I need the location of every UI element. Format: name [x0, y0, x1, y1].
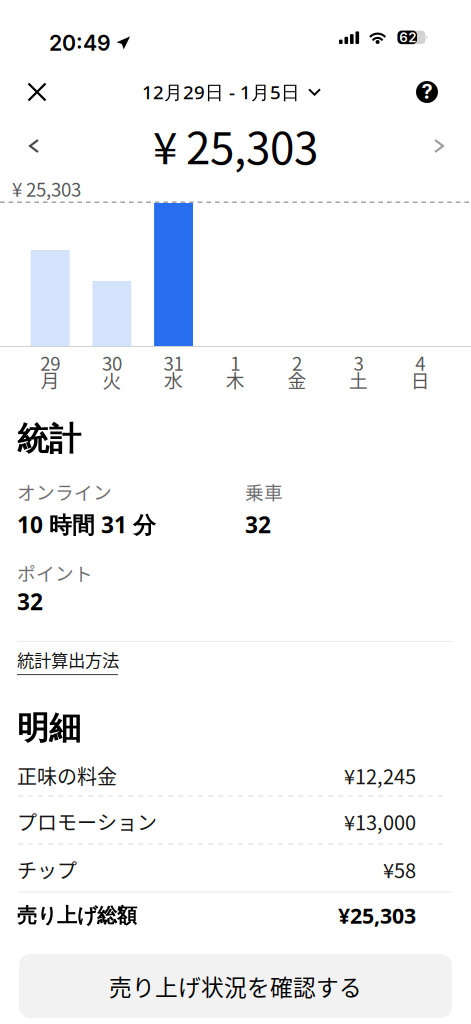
- staticText: ¥25,303: [338, 901, 416, 930]
- staticText: 木: [226, 366, 245, 393]
- staticText: 明細: [17, 708, 81, 748]
- staticText: 32: [17, 586, 43, 617]
- staticText: ポイント: [17, 559, 93, 586]
- staticText: ¥ 25,303: [12, 175, 81, 202]
- staticText: 統計算出方法: [17, 647, 119, 672]
- button[interactable]: Help: [403, 68, 451, 116]
- staticText: 土: [349, 366, 368, 393]
- staticText: 10 時間 31 分: [17, 509, 156, 540]
- button[interactable]: 統計算出方法: [17, 647, 119, 675]
- staticText: 1: [230, 349, 240, 376]
- staticText: 統計: [17, 419, 81, 459]
- staticText: 3: [354, 349, 364, 376]
- staticText: 正味の料金: [17, 761, 117, 790]
- staticText: 日: [411, 366, 430, 393]
- staticText: 30: [102, 349, 122, 376]
- staticText: オンライン: [17, 478, 112, 505]
- button[interactable]: Next week: [416, 123, 462, 169]
- staticText: 金: [287, 366, 306, 393]
- button[interactable]: Previous week: [11, 123, 57, 169]
- button[interactable]: 売り上げ状況を確認する: [19, 954, 452, 1018]
- staticText: 売り上げ総額: [17, 903, 137, 928]
- staticText: ¥13,000: [344, 807, 416, 836]
- staticText: 水: [164, 366, 183, 393]
- staticText: チップ: [17, 855, 77, 884]
- staticText: ¥58: [383, 855, 416, 884]
- staticText: 31: [163, 349, 183, 376]
- staticText: 月: [41, 366, 60, 393]
- staticText: 売り上げ状況を確認する: [109, 970, 362, 1002]
- staticText: 32: [245, 509, 271, 540]
- staticText: ¥12,245: [344, 761, 416, 790]
- staticText: プロモーション: [17, 807, 157, 836]
- staticText: 2: [292, 349, 302, 376]
- button[interactable]: 12月29日 - 1月5日: [142, 68, 320, 116]
- button[interactable]: Close: [13, 68, 61, 116]
- staticText: 29: [40, 349, 60, 376]
- staticText: 20:49: [49, 30, 111, 56]
- staticText: 火: [102, 366, 121, 393]
- staticText: 62: [399, 29, 416, 45]
- staticText: ¥ 25,303: [153, 113, 318, 177]
- staticText: ?: [421, 79, 432, 104]
- staticText: 乗車: [245, 478, 283, 505]
- staticText: 12月29日 - 1月5日: [142, 79, 300, 105]
- staticText: 4: [415, 349, 425, 376]
